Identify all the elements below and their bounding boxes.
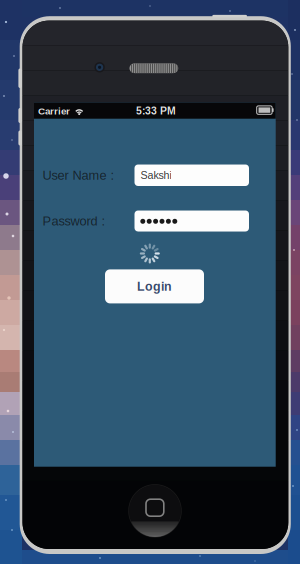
staticText: Password : [43,214,106,228]
staticText: 5:33 PM [136,105,176,117]
staticText: Login [137,279,172,293]
staticText: Carrier [38,105,70,116]
staticText: Sakshi [140,169,171,181]
staticText: User Name : [43,168,115,182]
button[interactable]: Login [105,269,204,303]
